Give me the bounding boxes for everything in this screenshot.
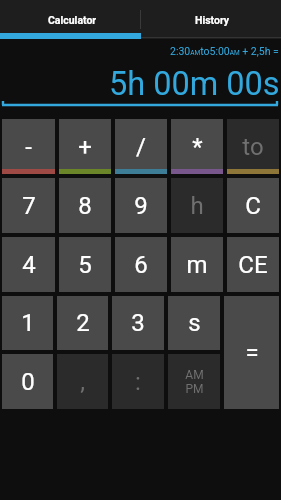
button[interactable]: to (227, 119, 279, 174)
staticText: 5 (78, 251, 92, 279)
staticText: AM PM (185, 368, 204, 396)
staticText: 3 (131, 309, 145, 337)
button[interactable]: 1 (2, 296, 53, 350)
button[interactable]: 8 (59, 178, 111, 233)
button[interactable]: 2 (57, 296, 108, 350)
staticText: 4 (22, 251, 36, 279)
staticText: * (192, 133, 203, 161)
staticText: 7 (22, 192, 36, 220)
staticText: 9 (134, 192, 148, 220)
button[interactable]: Divide (115, 119, 167, 174)
button[interactable]: History (142, 3, 281, 36)
staticText: 0 (21, 368, 35, 396)
button[interactable]: Equals (224, 296, 279, 409)
staticText: 5h 00m 00s (109, 65, 280, 103)
staticText: to (242, 133, 264, 161)
staticText: - (25, 133, 32, 161)
staticText: = (245, 339, 259, 367)
staticText: CE (238, 251, 268, 279)
button[interactable]: h (171, 178, 223, 233)
button[interactable]: : (112, 354, 164, 409)
button[interactable]: 4 (2, 237, 55, 292)
button[interactable]: Minus (2, 119, 55, 174)
button[interactable]: 0 (2, 354, 53, 409)
staticText: C (245, 192, 261, 220)
button[interactable]: CE (227, 237, 279, 292)
button[interactable]: 3 (112, 296, 164, 350)
staticText: s (188, 309, 201, 337)
staticText: History (195, 14, 230, 26)
staticText: 2 (76, 309, 90, 337)
button[interactable]: , (57, 354, 108, 409)
button[interactable]: m (171, 237, 223, 292)
staticText: + (78, 133, 92, 161)
staticText: 2:30AMto5:00AM + 2,5h = (170, 45, 279, 57)
button[interactable]: C (227, 178, 279, 233)
button[interactable]: Multiply (171, 119, 223, 174)
staticText: Calculator (48, 14, 97, 26)
button[interactable]: 5 (59, 237, 111, 292)
button[interactable]: 7 (2, 178, 55, 233)
staticText: m (186, 251, 208, 279)
button[interactable]: Plus (59, 119, 111, 174)
staticText: 1 (21, 309, 35, 337)
staticText: , (80, 368, 85, 396)
button[interactable]: AM PM (168, 354, 220, 409)
button[interactable]: 6 (115, 237, 167, 292)
button[interactable]: 9 (115, 178, 167, 233)
staticText: h (190, 192, 204, 220)
staticText: 6 (134, 251, 148, 279)
staticText: : (135, 368, 141, 396)
button[interactable]: s (168, 296, 220, 350)
staticText: 8 (78, 192, 92, 220)
staticText: / (136, 133, 146, 161)
button[interactable]: Calculator (2, 3, 142, 36)
